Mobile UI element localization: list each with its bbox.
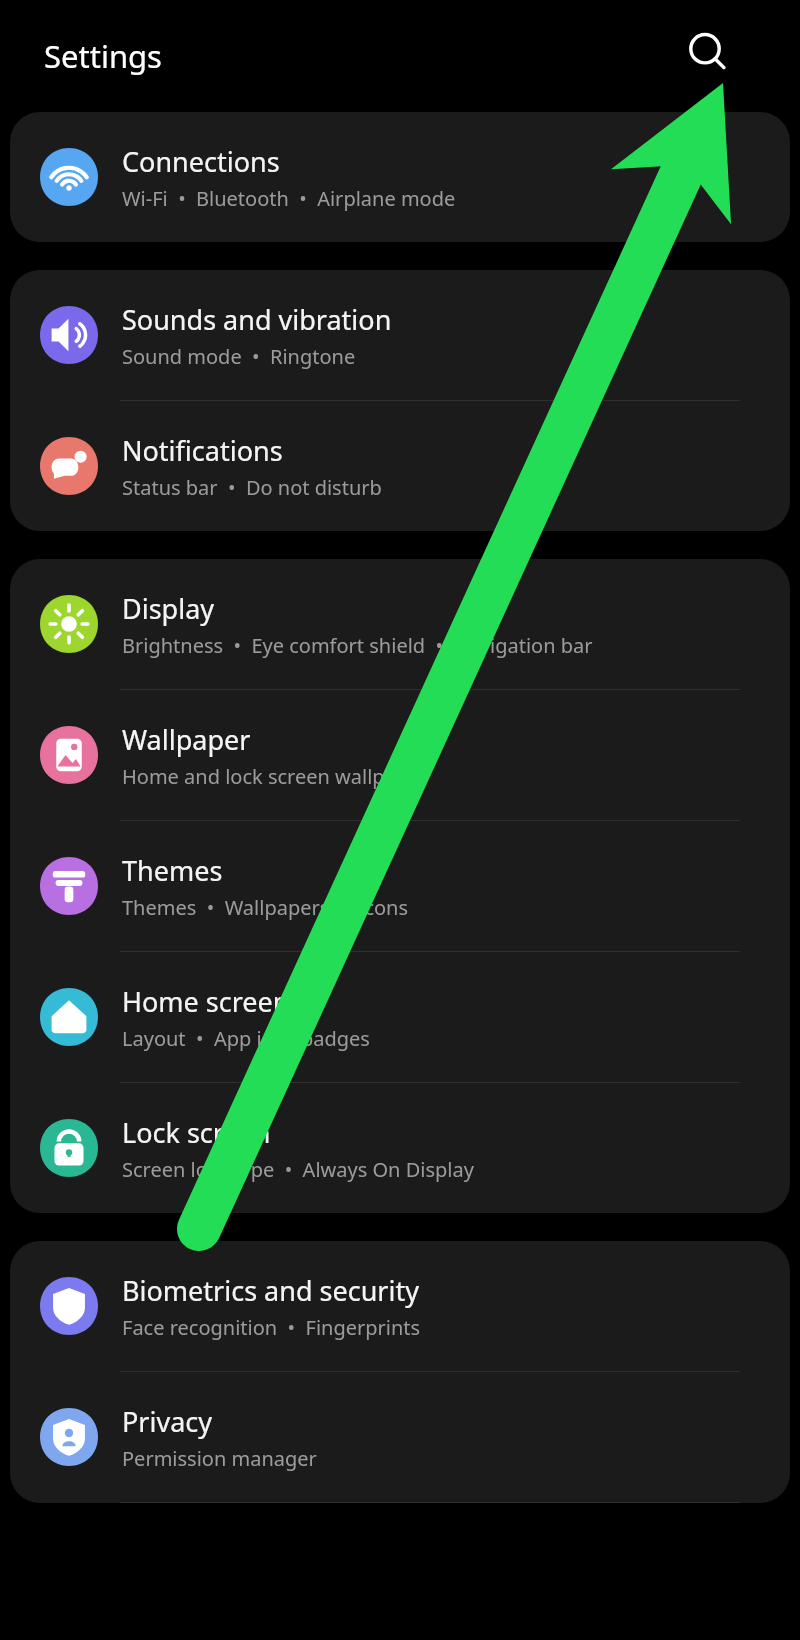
staticText: Display [122,590,215,627]
button[interactable]: Connections [10,112,790,242]
staticText: Settings [44,35,162,77]
staticText: Sounds and vibration [122,301,392,338]
staticText: Notifications [122,432,283,469]
staticText: Layout • App icon badges [122,1025,370,1052]
button[interactable]: Lock screen [10,1083,790,1213]
button[interactable]: Search [672,19,738,85]
staticText: Wi-Fi • Bluetooth • Airplane mode [122,185,456,212]
staticText: Brightness • Eye comfort shield • Naviga… [122,632,593,659]
staticText: Sound mode • Ringtone [122,343,356,370]
staticText: Wallpaper [122,721,251,758]
staticText: Lock screen [122,1114,271,1151]
button[interactable]: Privacy [10,1372,790,1502]
staticText: Biometrics and security [122,1272,419,1309]
staticText: Home and lock screen wallpaper [122,763,428,790]
staticText: Connections [122,143,280,180]
button[interactable]: Biometrics and security [10,1241,790,1371]
staticText: Themes • Wallpapers • Icons [122,894,409,921]
staticText: Home screen [122,983,290,1020]
staticText: Screen lock type • Always On Display [122,1156,474,1183]
button[interactable]: Home screen [10,952,790,1082]
staticText: Face recognition • Fingerprints [122,1314,421,1341]
staticText: Privacy [122,1403,213,1440]
staticText: Themes [122,852,223,889]
button[interactable]: Sounds and vibration [10,270,790,400]
staticText: Status bar • Do not disturb [122,474,382,501]
button[interactable]: Notifications [10,401,790,531]
staticText: Permission manager [122,1445,317,1472]
button[interactable]: Wallpaper [10,690,790,820]
button[interactable]: Display [10,559,790,689]
button[interactable]: Themes [10,821,790,951]
